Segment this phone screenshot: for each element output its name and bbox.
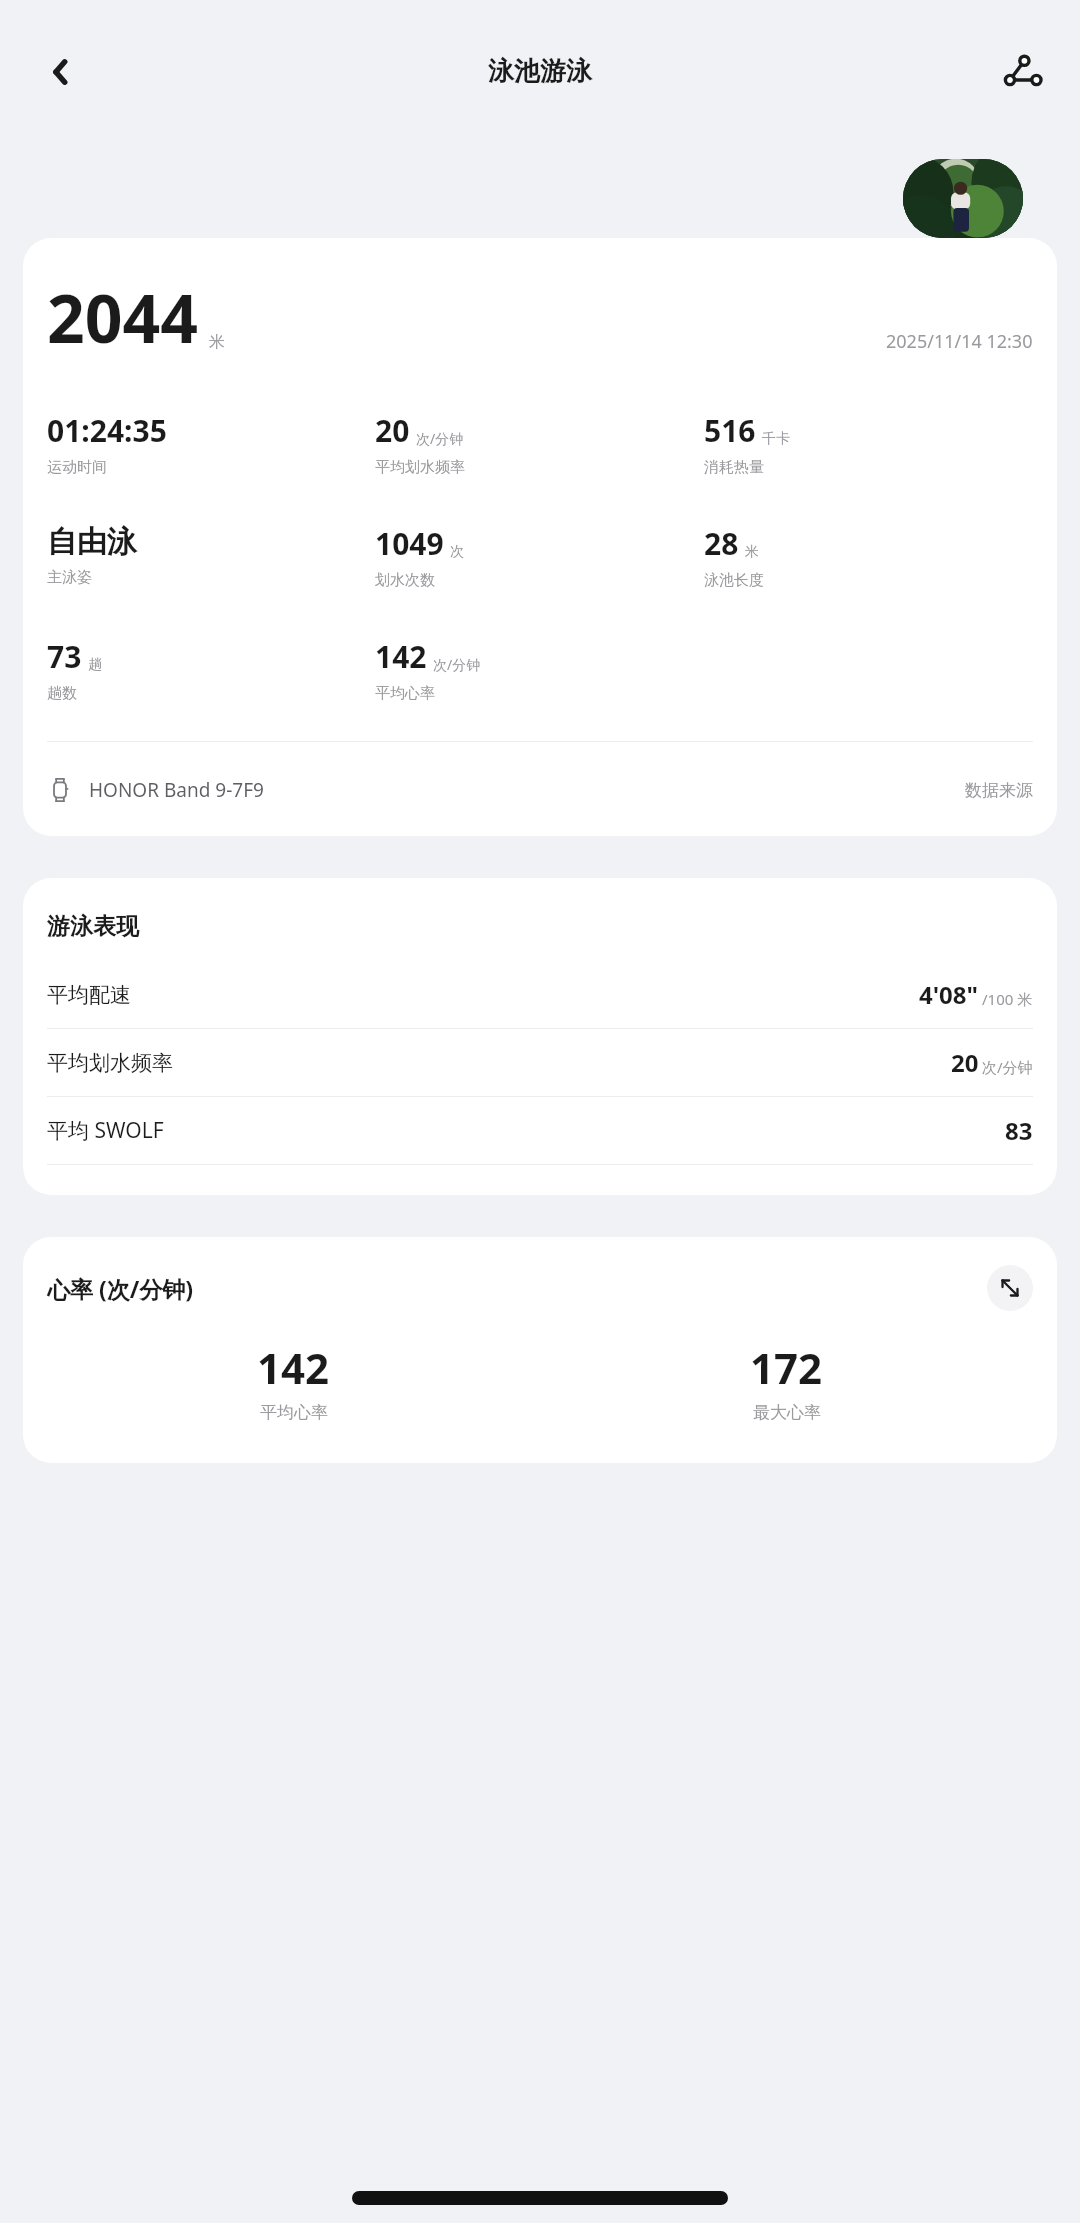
staticText: 平均划水频率 — [47, 1050, 173, 1076]
staticText: 142 — [257, 1339, 330, 1396]
staticText: 83 — [1005, 1114, 1033, 1147]
staticText: 消耗热量 — [704, 458, 764, 477]
staticText: 2025/11/14 12:30 — [886, 329, 1033, 354]
staticText: 运动时间 — [47, 458, 107, 477]
staticText: 泳池长度 — [704, 571, 764, 590]
button[interactable]: 平均配速 — [47, 961, 1033, 1028]
staticText: 游泳表现 — [47, 912, 139, 941]
button[interactable]: Share — [990, 40, 1054, 104]
staticText: 平均配速 — [47, 982, 131, 1008]
staticText: /100 米 — [982, 989, 1033, 1009]
staticText: 平均 SWOLF — [47, 1116, 164, 1145]
staticText: 米 — [209, 332, 225, 352]
staticText: 趟数 — [47, 684, 77, 703]
staticText: 划水次数 — [375, 571, 435, 590]
staticText: 平均心率 — [260, 1402, 328, 1423]
staticText: 172 — [750, 1339, 823, 1396]
button[interactable]: 平均 SWOLF — [47, 1097, 1033, 1164]
staticText: 73 — [47, 636, 82, 677]
staticText: 516 — [704, 410, 756, 451]
staticText: 次/分钟 — [433, 655, 481, 674]
button[interactable]: 平均划水频率 — [47, 1029, 1033, 1096]
staticText: 数据来源 — [965, 780, 1033, 801]
staticText: HONOR Band 9-7F9 — [89, 777, 264, 803]
staticText: 01:24:35 — [47, 410, 167, 451]
staticText: 次 — [450, 543, 464, 561]
staticText: 最大心率 — [753, 1402, 821, 1423]
button[interactable]: HONOR Band 9-7F9 — [47, 766, 1033, 814]
staticText: 平均划水频率 — [375, 458, 465, 477]
staticText: 米 — [745, 543, 759, 561]
button[interactable]: Profile photo — [903, 159, 1023, 238]
button[interactable]: Back — [30, 40, 94, 104]
staticText: 次/分钟 — [982, 1057, 1033, 1077]
button[interactable]: Expand chart — [987, 1265, 1033, 1311]
staticText: 142 — [375, 636, 427, 677]
staticText: 2044 — [47, 272, 199, 362]
staticText: 20 — [951, 1046, 979, 1079]
staticText: 28 — [704, 523, 739, 564]
staticText: 主泳姿 — [47, 568, 92, 587]
staticText: 心率 (次/分钟) — [47, 1273, 194, 1304]
staticText: 1049 — [375, 523, 444, 564]
staticText: 自由泳 — [47, 523, 137, 561]
staticText: 千卡 — [762, 430, 790, 448]
staticText: 平均心率 — [375, 684, 435, 703]
staticText: 趟 — [88, 656, 102, 674]
staticText: 4'08" — [919, 978, 979, 1011]
staticText: 次/分钟 — [416, 429, 464, 448]
staticText: 20 — [375, 410, 410, 451]
staticText: 泳池游泳 — [488, 55, 592, 88]
